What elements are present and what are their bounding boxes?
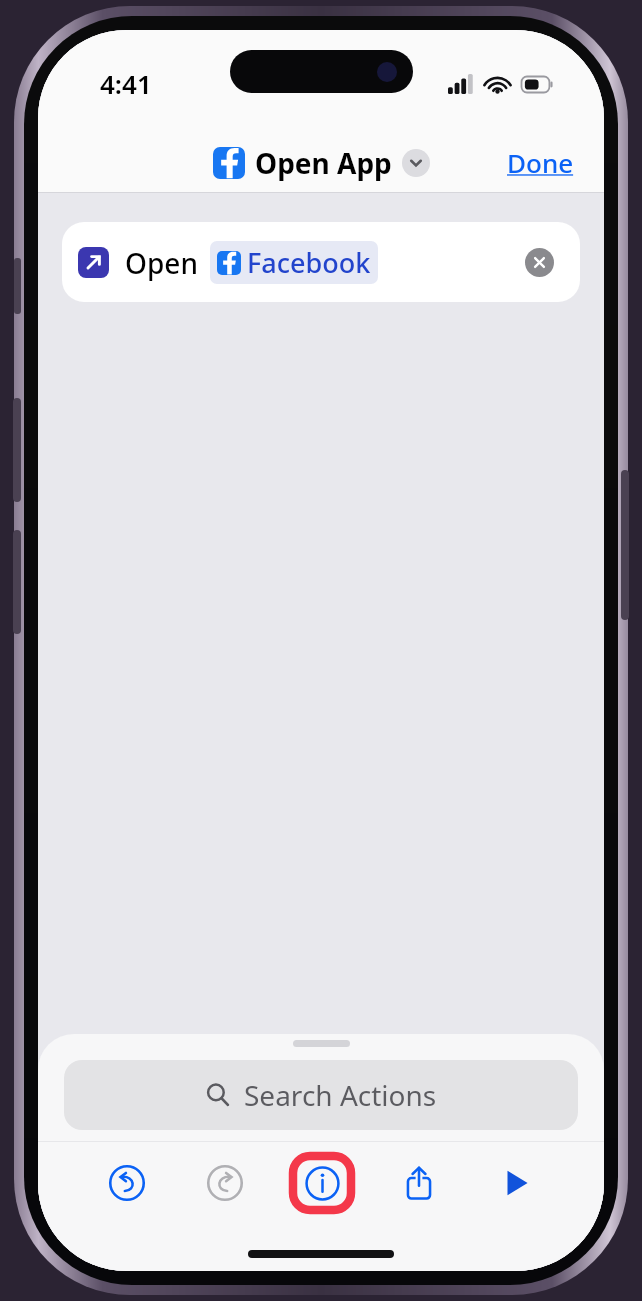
button[interactable]: Done bbox=[497, 139, 584, 186]
staticText: Search Actions bbox=[244, 1076, 437, 1114]
button[interactable]: Facebook bbox=[210, 241, 378, 284]
button[interactable]: Show more options bbox=[402, 149, 430, 177]
button[interactable]: Details bbox=[289, 1152, 355, 1214]
button[interactable]: Search Actions bbox=[64, 1060, 578, 1130]
staticText: Open bbox=[125, 244, 198, 282]
button[interactable]: Undo bbox=[96, 1152, 158, 1214]
button[interactable]: Share bbox=[388, 1152, 450, 1214]
button[interactable]: Open bbox=[62, 222, 580, 302]
button[interactable]: Redo bbox=[194, 1152, 256, 1214]
staticText: Done bbox=[507, 145, 574, 180]
staticText: Open App bbox=[255, 144, 392, 182]
staticText: 4:41 bbox=[100, 66, 152, 101]
staticText: Facebook bbox=[247, 244, 371, 281]
button[interactable]: Run bbox=[485, 1152, 547, 1214]
button[interactable]: Remove action bbox=[525, 248, 554, 277]
